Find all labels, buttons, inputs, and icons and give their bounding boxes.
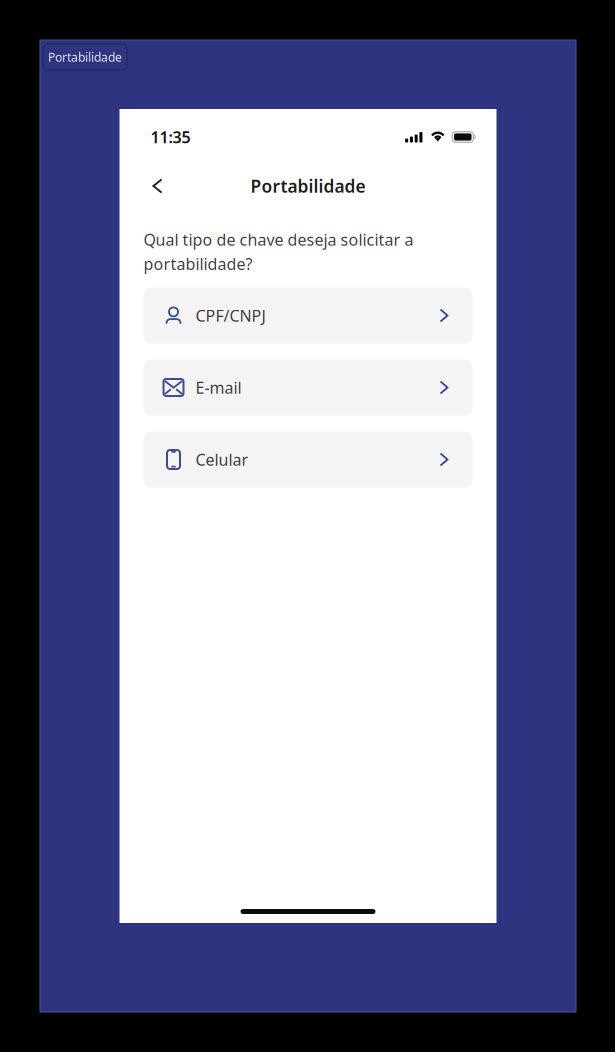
staticText: E-mail xyxy=(195,377,241,398)
staticText: Portabilidade xyxy=(48,49,122,65)
staticText: Qual tipo de chave deseja solicitar a po… xyxy=(143,229,413,274)
staticText: CPF/CNPJ xyxy=(195,305,265,326)
button[interactable]: Voltar xyxy=(140,169,174,203)
button[interactable]: E-mail xyxy=(143,359,472,415)
button[interactable]: Celular xyxy=(143,431,472,487)
staticText: Celular xyxy=(195,449,248,470)
staticText: 11:35 xyxy=(150,126,190,148)
staticText: Portabilidade xyxy=(250,174,365,197)
button[interactable]: CPF/CNPJ xyxy=(143,287,472,343)
